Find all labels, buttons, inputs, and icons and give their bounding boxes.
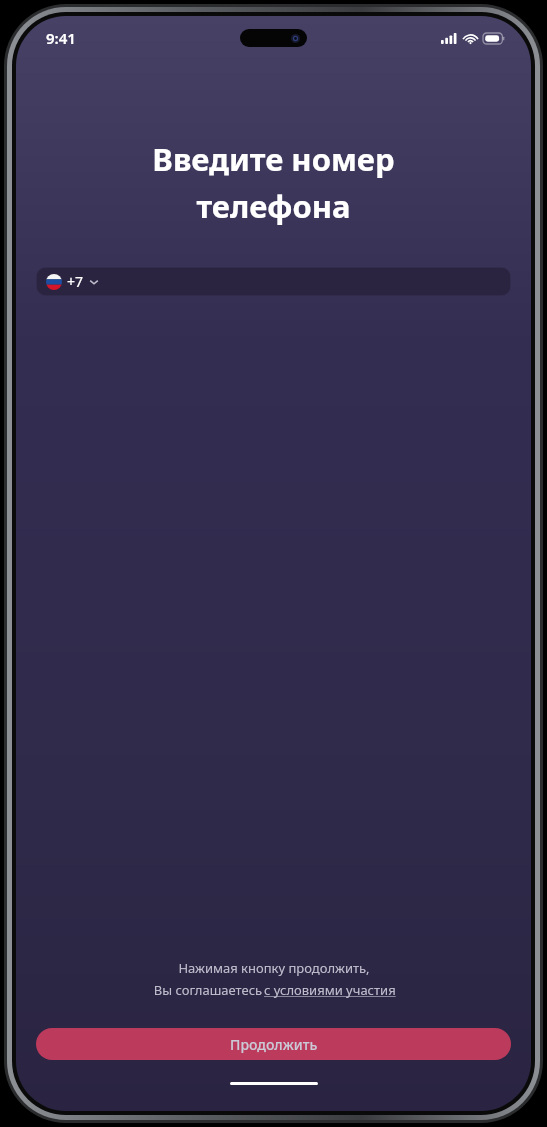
staticText: Продолжить [230, 1035, 318, 1054]
button[interactable]: Продолжить [36, 1028, 511, 1060]
button[interactable]: с условиями участия [264, 981, 396, 999]
staticText: Нажимая кнопку продолжить, [178, 959, 370, 977]
staticText: 9:41 [46, 28, 76, 48]
button[interactable]: +7 [36, 267, 511, 296]
staticText: Введите номер [152, 138, 395, 180]
staticText: Вы соглашаетесь [152, 981, 264, 999]
staticText: телефона [196, 185, 351, 227]
staticText: +7 [67, 272, 84, 291]
staticText: с условиями участия [264, 981, 396, 999]
other: Select country code [89, 277, 99, 287]
